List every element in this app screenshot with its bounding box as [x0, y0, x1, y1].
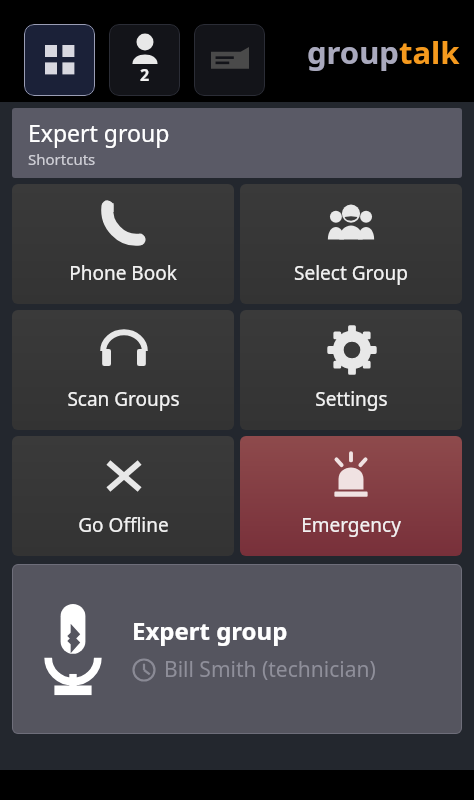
staticText: Select Group [294, 260, 408, 286]
staticText: Go Offline [78, 512, 169, 538]
button[interactable]: Scan Groups [12, 310, 234, 430]
button[interactable]: Phone Book [12, 184, 234, 304]
staticText: group [307, 31, 399, 73]
staticText: talk [399, 31, 460, 73]
button[interactable]: Emergency [240, 436, 462, 556]
staticText: Shortcuts [28, 149, 96, 169]
button[interactable]: Go Offline [12, 436, 234, 556]
staticText: Expert group [132, 614, 288, 647]
staticText: Scan Groups [67, 386, 180, 412]
staticText: Phone Book [69, 260, 177, 286]
button[interactable]: Settings [240, 310, 462, 430]
button[interactable]: Expert group [12, 564, 462, 734]
staticText: 2 [140, 64, 150, 86]
button[interactable]: Select Group [240, 184, 462, 304]
button[interactable]: Shortcuts [24, 24, 95, 96]
staticText: Emergency [301, 512, 401, 538]
staticText: Bill Smith (technician) [164, 655, 376, 684]
button[interactable]: Contacts, 2 online [109, 24, 180, 96]
button[interactable]: Messages [194, 24, 265, 96]
staticText: Expert group [28, 117, 170, 148]
button[interactable]: Expert group [12, 108, 462, 178]
staticText: Settings [315, 386, 388, 412]
